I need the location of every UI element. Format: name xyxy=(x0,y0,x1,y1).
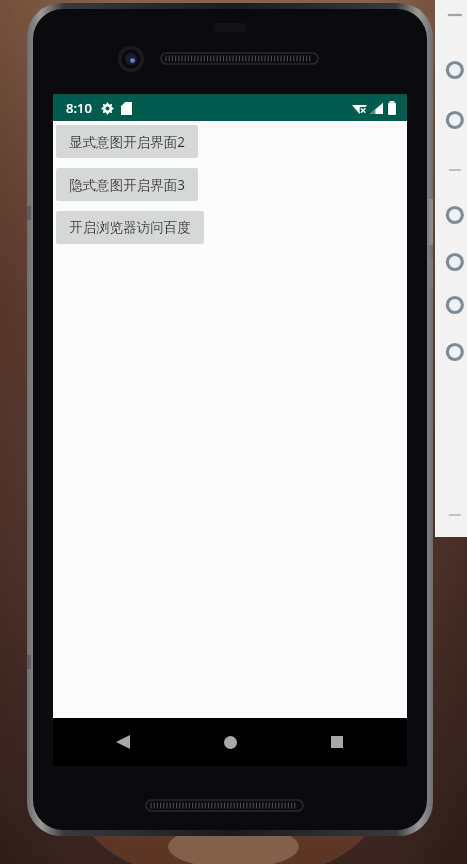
staticText: 开启浏览器访问百度 xyxy=(69,219,191,236)
staticText: 8:10 xyxy=(66,99,92,117)
staticText: 隐式意图开启界面3 xyxy=(69,176,185,194)
button[interactable]: Home xyxy=(212,724,248,760)
button[interactable]: 开启浏览器访问百度 xyxy=(56,211,204,244)
button[interactable]: Back xyxy=(105,724,141,760)
staticText: 显式意图开启界面2 xyxy=(69,133,185,151)
button[interactable]: 显式意图开启界面2 xyxy=(56,125,198,158)
button[interactable]: Recent apps xyxy=(319,724,355,760)
button[interactable]: 隐式意图开启界面3 xyxy=(56,168,198,201)
